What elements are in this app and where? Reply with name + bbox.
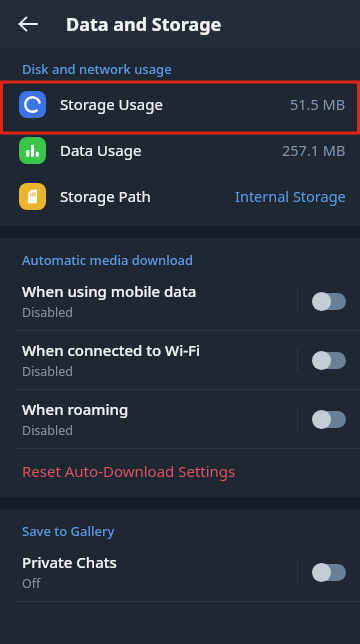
staticText: Disabled	[22, 304, 74, 321]
button[interactable]: When using mobile data	[298, 278, 360, 324]
staticText: Internal Storage	[235, 186, 346, 206]
staticText: Data Usage	[60, 140, 142, 160]
button[interactable]: Back	[8, 4, 48, 44]
staticText: Reset Auto-Download Settings	[22, 461, 236, 481]
button[interactable]: Storage Path	[0, 173, 360, 219]
staticText: Storage Usage	[60, 94, 163, 114]
button[interactable]: Reset Auto-Download Settings	[0, 449, 360, 493]
staticText: Disk and network usage	[22, 60, 172, 78]
staticText: Private Chats	[22, 552, 117, 572]
button[interactable]: When using mobile data	[0, 272, 360, 330]
button[interactable]: When connected to Wi-Fi	[298, 337, 360, 383]
staticText: Off	[22, 575, 41, 592]
staticText: Data and Storage	[66, 12, 222, 37]
staticText: Storage Path	[60, 186, 151, 206]
staticText: 257.1 MB	[282, 140, 346, 160]
staticText: When using mobile data	[22, 281, 197, 301]
button[interactable]: Private Chats	[298, 549, 360, 595]
staticText: Automatic media download	[22, 251, 194, 269]
staticText: 51.5 MB	[290, 94, 346, 114]
button[interactable]: Private Chats	[0, 543, 360, 601]
button[interactable]: When roaming	[298, 396, 360, 442]
staticText: Disabled	[22, 363, 74, 380]
staticText: When connected to Wi-Fi	[22, 340, 201, 360]
button[interactable]: When connected to Wi-Fi	[0, 331, 360, 389]
staticText: When roaming	[22, 399, 129, 419]
button[interactable]: Storage Usage	[0, 81, 360, 127]
staticText: Save to Gallery	[22, 522, 115, 540]
staticText: Disabled	[22, 422, 74, 439]
button[interactable]: Data Usage	[0, 127, 360, 173]
button[interactable]: When roaming	[0, 390, 360, 448]
